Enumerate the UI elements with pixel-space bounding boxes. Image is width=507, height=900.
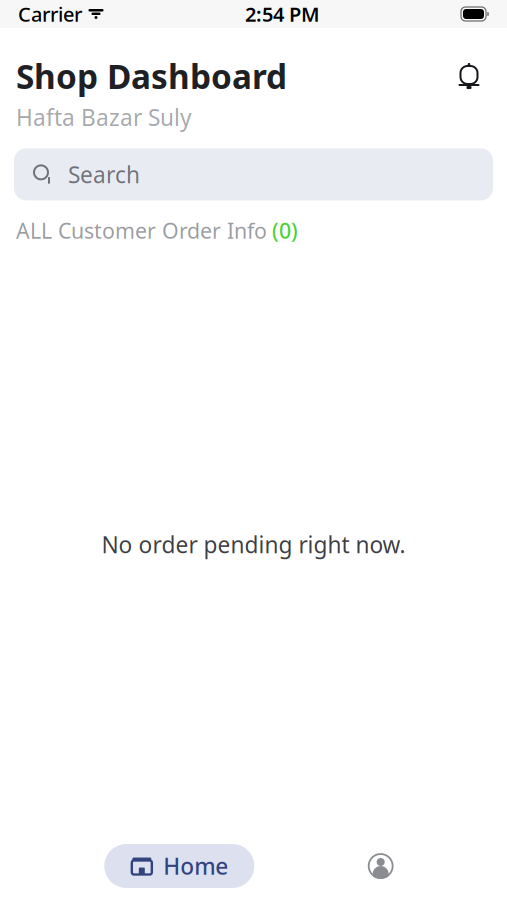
button[interactable]: Search — [14, 148, 493, 200]
staticText: No order pending right now. — [101, 529, 405, 559]
staticText: Shop Dashboard — [16, 54, 287, 98]
button[interactable]: Notifications — [447, 54, 491, 98]
staticText: Home — [163, 851, 228, 881]
staticText: 2:54 PM — [245, 1, 320, 27]
staticText: Carrier — [18, 1, 82, 27]
staticText: Hafta Bazar Suly — [16, 102, 192, 132]
button[interactable]: Profile — [359, 844, 403, 888]
staticText: (0) — [272, 216, 298, 245]
staticText: Search — [68, 159, 140, 189]
staticText: ALL Customer Order Info — [16, 216, 267, 245]
button[interactable]: Home — [104, 844, 254, 888]
